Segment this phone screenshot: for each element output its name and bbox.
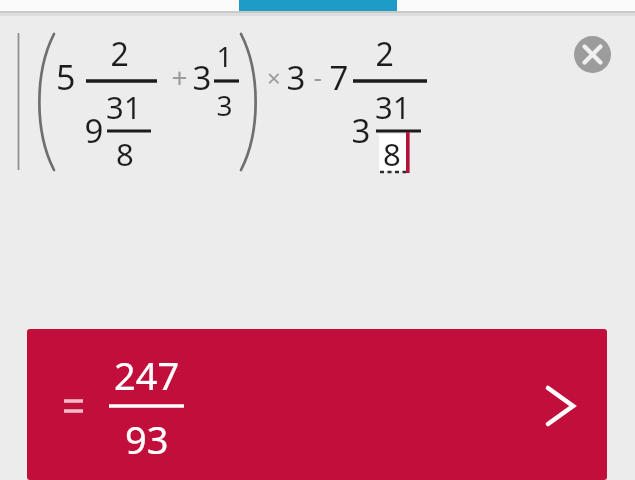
button[interactable]: Close <box>574 36 611 73</box>
button[interactable] <box>27 329 607 480</box>
